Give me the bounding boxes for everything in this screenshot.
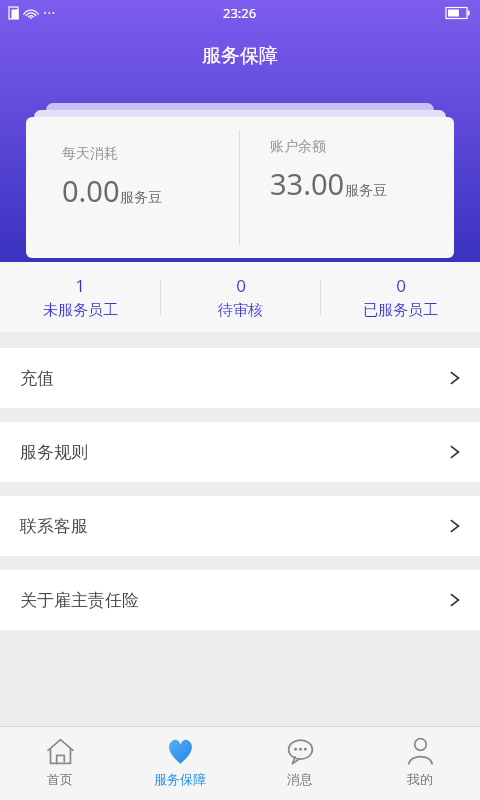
other: 服务保障 (167, 738, 194, 765)
staticText: 23:26 (223, 4, 257, 22)
staticText: 服务保障 (154, 771, 206, 787)
button[interactable]: 1 (0, 266, 160, 328)
staticText: 0 (236, 274, 246, 297)
staticText: 我的 (407, 771, 433, 787)
staticText: 0 (396, 274, 406, 297)
staticText: 每天消耗 (62, 145, 118, 163)
staticText: 关于雇主责任险 (20, 590, 139, 611)
staticText: 服务保障 (202, 44, 278, 68)
staticText: 已服务员工 (363, 301, 438, 320)
staticText: 待审核 (218, 301, 263, 320)
staticText: 账户余额 (270, 138, 326, 156)
staticText: 服务规则 (20, 442, 88, 463)
button[interactable]: 服务规则 (0, 422, 480, 482)
button[interactable]: 0 (161, 266, 320, 328)
button[interactable]: 消息 (240, 727, 360, 800)
staticText: 未服务员工 (43, 301, 118, 320)
staticText: 联系客服 (20, 516, 88, 537)
staticText: 33.00 (270, 164, 345, 203)
button[interactable]: 我的 (360, 727, 480, 800)
button[interactable]: 关于雇主责任险 (0, 570, 480, 630)
button[interactable]: 充值 (0, 348, 480, 408)
staticText: 服务豆 (345, 182, 387, 200)
button[interactable]: 0 (321, 266, 480, 328)
staticText: 消息 (287, 771, 313, 787)
staticText: 0.00 (62, 171, 120, 210)
staticText: 服务豆 (120, 189, 162, 207)
other: 消息 (287, 738, 314, 765)
button[interactable]: 首页 (0, 727, 120, 800)
button[interactable]: 联系客服 (0, 496, 480, 556)
staticText: 充值 (20, 368, 54, 389)
staticText: 1 (75, 274, 85, 297)
button[interactable]: 服务保障 (120, 727, 240, 800)
staticText: 首页 (47, 771, 73, 787)
